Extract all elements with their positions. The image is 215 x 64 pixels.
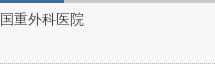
- staticText: 国重外科医院: [0, 11, 84, 29]
- button[interactable]: 国重外科医院: [0, 3, 215, 64]
- other: Page loading progress: [0, 0, 215, 3]
